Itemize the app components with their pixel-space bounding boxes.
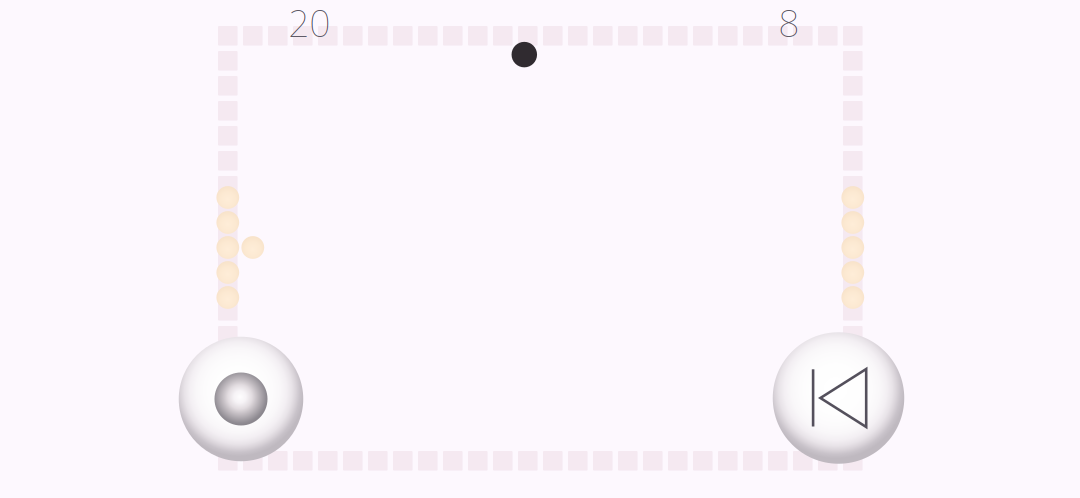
button[interactable]: Restart	[773, 332, 904, 464]
button[interactable]: Launch	[179, 337, 303, 461]
staticText: 8	[778, 0, 799, 47]
staticText: 20	[288, 0, 330, 47]
